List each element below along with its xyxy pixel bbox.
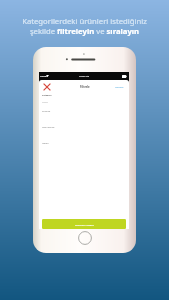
staticText: Temizle: [115, 85, 124, 88]
button[interactable]: Kapat: [41, 81, 53, 93]
staticText: Sonuçları Göster: [75, 223, 94, 226]
button[interactable]: Kategori: [39, 91, 129, 107]
button[interactable]: Kolonya: [39, 107, 129, 123]
staticText: Kategorilerdeki ürünleri istediğiniz şek…: [22, 16, 147, 36]
staticText: Islak Mendil: [42, 126, 55, 129]
button[interactable]: Marka: [39, 139, 129, 155]
staticText: Filtrele: [80, 85, 90, 89]
staticText: Kişisel: [42, 101, 48, 104]
button[interactable]: Sonuçları Göster: [42, 219, 126, 229]
button[interactable]: Islak Mendil: [39, 123, 129, 139]
staticText: Kolonya: [42, 110, 51, 113]
staticText: Carrier: [40, 75, 48, 78]
staticText: 10:15 AM: [79, 75, 90, 78]
button[interactable]: Temizle: [113, 82, 126, 91]
staticText: Marka: [42, 142, 49, 145]
staticText: Kategori: [42, 94, 52, 97]
